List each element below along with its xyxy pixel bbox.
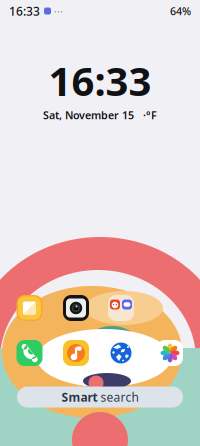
button[interactable]: Social folder: [108, 295, 134, 321]
button[interactable]: Music: [63, 340, 89, 366]
staticText: Sat, November 15 ·°F: [43, 108, 157, 122]
button[interactable]: Browser: [108, 340, 134, 366]
staticText: ···: [54, 4, 63, 18]
button[interactable]: Phone: [16, 340, 42, 366]
button[interactable]: Photos: [157, 340, 183, 366]
staticText: Smart: [61, 389, 100, 405]
staticText: 16:33: [9, 3, 40, 19]
button[interactable]: Smart: [17, 386, 183, 407]
staticText: search: [100, 389, 138, 405]
button[interactable]: Notes: [16, 295, 42, 321]
button[interactable]: Camera: [63, 295, 89, 321]
staticText: 64%: [170, 4, 191, 18]
staticText: 16:33: [48, 54, 151, 107]
